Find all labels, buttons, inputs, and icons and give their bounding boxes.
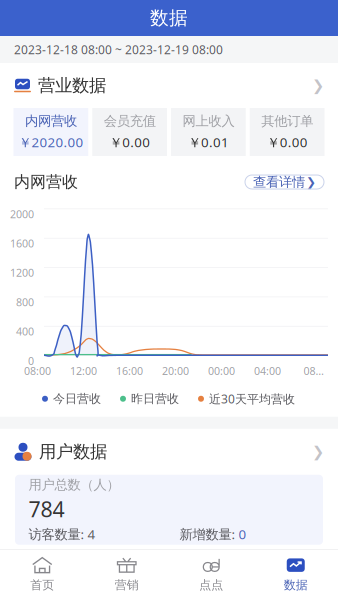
staticText: 0: [28, 354, 34, 368]
staticText: 今日营收: [53, 391, 101, 406]
staticText: ￥0.00: [109, 133, 150, 151]
staticText: 内网营收: [14, 172, 78, 192]
staticText: 数据: [284, 578, 308, 592]
staticText: 数据: [150, 6, 188, 29]
staticText: 12:00: [70, 364, 97, 378]
button[interactable]: 内网营收: [13, 108, 88, 156]
button[interactable]: 网上收入: [171, 108, 246, 156]
staticText: 点点: [199, 578, 223, 592]
staticText: 昨日营收: [131, 391, 179, 406]
staticText: 08:00: [24, 364, 51, 378]
staticText: 用户数据: [39, 441, 107, 462]
staticText: 20:00: [162, 364, 189, 378]
staticText: 16:00: [116, 364, 143, 378]
staticText: ￥0.01: [188, 133, 229, 151]
staticText: 新增数量:: [179, 525, 238, 543]
staticText: 2023-12-18 08:00 ~ 2023-12-19 08:00: [14, 41, 223, 57]
staticText: 访客数量: 4: [28, 525, 95, 543]
staticText: 会员充值: [104, 113, 156, 129]
staticText: 近30天平均营收: [209, 391, 295, 407]
staticText: 2000: [10, 207, 34, 221]
button[interactable]: 用户数据: [0, 429, 338, 475]
button[interactable]: 会员充值: [92, 108, 167, 156]
button[interactable]: 其他订单: [250, 108, 325, 156]
staticText: 查看详情: [253, 174, 305, 190]
staticText: 00:00: [208, 364, 235, 378]
button[interactable]: 查看详情: [245, 175, 324, 189]
staticText: 784: [28, 495, 64, 523]
button[interactable]: 数据: [253, 549, 338, 600]
staticText: ❯: [306, 175, 316, 189]
staticText: 营业数据: [38, 75, 106, 96]
staticText: 其他订单: [261, 113, 313, 129]
staticText: 400: [16, 324, 34, 338]
staticText: 首页: [30, 578, 54, 592]
staticText: ￥0.00: [267, 133, 308, 151]
button[interactable]: 首页: [0, 549, 84, 600]
staticText: 1200: [10, 266, 34, 280]
staticText: 0: [238, 525, 246, 543]
staticText: ￥2020.00: [18, 133, 83, 151]
staticText: 800: [16, 295, 34, 309]
staticText: 08…: [303, 364, 323, 378]
staticText: 04:00: [254, 364, 281, 378]
staticText: ❯: [312, 443, 324, 460]
staticText: 网上收入: [182, 113, 234, 129]
staticText: 用户总数（人）: [28, 476, 119, 493]
staticText: 营销: [115, 578, 139, 592]
staticText: 1600: [10, 236, 34, 250]
button[interactable]: 点点: [169, 549, 253, 600]
button[interactable]: 营业数据: [0, 63, 338, 108]
button[interactable]: 2023-12-18 08:00 ~ 2023-12-19 08:00: [0, 36, 338, 63]
staticText: ❯: [312, 77, 324, 94]
button[interactable]: 营销: [84, 549, 169, 600]
staticText: 内网营收: [25, 113, 77, 129]
